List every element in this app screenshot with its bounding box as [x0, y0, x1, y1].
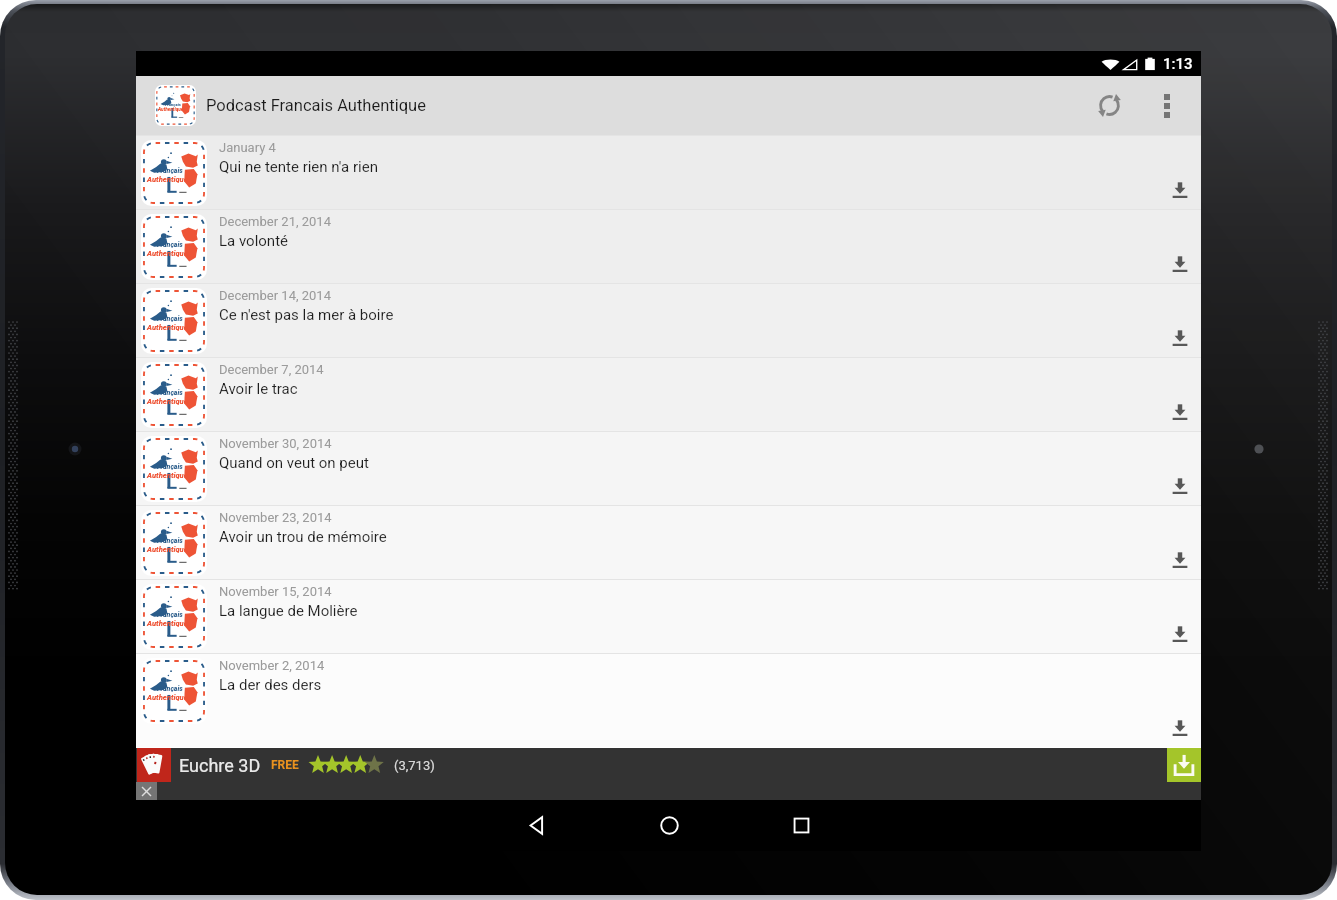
staticText: Français	[157, 611, 183, 619]
staticText: Français	[157, 463, 183, 471]
button[interactable]: Download	[1161, 244, 1199, 282]
staticText: (3,713)	[394, 758, 435, 773]
staticText: November 15, 2014	[219, 584, 332, 599]
staticText: Authentique	[147, 545, 188, 554]
button[interactable]: Download	[1161, 318, 1199, 356]
button[interactable]: Français	[136, 505, 1201, 579]
button[interactable]: More options	[1141, 80, 1193, 132]
button[interactable]: Français	[136, 653, 1201, 747]
button[interactable]: Refresh	[1077, 76, 1141, 135]
staticText: Authentique	[147, 323, 188, 332]
staticText: Qui ne tente rien n'a rien	[219, 158, 378, 176]
staticText: Ce n'est pas la mer à boire	[219, 306, 394, 324]
button[interactable]: Install	[1167, 748, 1201, 782]
staticText: Quand on veut on peut	[219, 454, 369, 472]
button[interactable]: Français	[136, 357, 1201, 431]
staticText: Authentique	[147, 249, 188, 258]
staticText: November 23, 2014	[219, 510, 332, 525]
staticText: Français	[157, 167, 183, 175]
staticText: La der des ders	[219, 676, 322, 694]
staticText: Authentique	[147, 693, 188, 702]
staticText: La volonté	[219, 232, 289, 250]
staticText: Authentique	[147, 175, 188, 184]
staticText: Authentique	[158, 107, 184, 113]
button[interactable]: Home	[634, 800, 704, 851]
staticText: Podcast Francais Authentique	[206, 96, 426, 115]
staticText: November 2, 2014	[219, 658, 325, 673]
staticText: December 14, 2014	[219, 288, 331, 303]
button[interactable]: Français	[136, 135, 1201, 209]
button[interactable]: Recent apps	[766, 800, 836, 851]
button[interactable]: Back	[502, 800, 572, 851]
staticText: La langue de Molière	[219, 602, 358, 620]
staticText: December 21, 2014	[219, 214, 331, 229]
staticText: FREE	[271, 758, 299, 772]
staticText: Français	[157, 685, 183, 693]
button[interactable]: Français	[136, 283, 1201, 357]
button[interactable]: Français	[136, 431, 1201, 505]
button[interactable]: Download	[1161, 466, 1199, 504]
button[interactable]: Download	[1161, 540, 1199, 578]
staticText: January 4	[219, 140, 276, 155]
button[interactable]: Download	[1161, 170, 1199, 208]
staticText: Français	[157, 241, 183, 249]
staticText: November 30, 2014	[219, 436, 332, 451]
staticText: Authentique	[147, 397, 188, 406]
staticText: Avoir un trou de mémoire	[219, 528, 387, 546]
staticText: Avoir le trac	[219, 380, 298, 398]
staticText: Français	[165, 102, 181, 107]
button[interactable]: Download	[1161, 708, 1199, 746]
staticText: December 7, 2014	[219, 362, 324, 377]
button[interactable]: Français	[136, 579, 1201, 653]
staticText: Français	[157, 537, 183, 545]
staticText: 1:13	[1163, 55, 1193, 73]
button[interactable]: Français	[136, 209, 1201, 283]
staticText: Authentique	[147, 619, 188, 628]
staticText: Français	[157, 315, 183, 323]
staticText: Authentique	[147, 471, 188, 480]
button[interactable]: Download	[1161, 392, 1199, 430]
button[interactable]: Close ad	[136, 782, 157, 800]
staticText: Français	[157, 389, 183, 397]
button[interactable]: Download	[1161, 614, 1199, 652]
staticText: Euchre 3D	[179, 755, 261, 776]
